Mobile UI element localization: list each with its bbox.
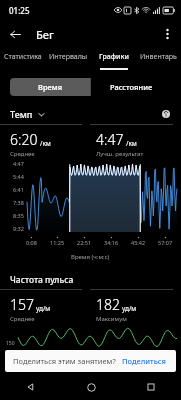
button[interactable]: 182 [90, 289, 181, 323]
button[interactable]: Назад [5, 24, 25, 44]
button[interactable]: Справка [159, 107, 173, 121]
staticText: Бег [36, 27, 54, 42]
staticText: Время [38, 82, 63, 92]
staticText: Поделиться [122, 356, 166, 366]
staticText: 150 [6, 340, 15, 347]
staticText: /км [126, 139, 137, 148]
button[interactable]: 157 [0, 289, 90, 323]
staticText: Графики [99, 52, 129, 62]
staticText: Максимум [96, 315, 127, 323]
button[interactable]: Главный экран [61, 374, 121, 400]
button[interactable]: 6:20 [0, 124, 90, 158]
button[interactable]: Расстояние [91, 78, 171, 96]
staticText: 4:47 [96, 130, 124, 149]
staticText: 45:42 [131, 239, 146, 246]
staticText: уд/м [122, 304, 137, 313]
staticText: Лучш. результат [96, 150, 144, 158]
button[interactable]: Время [10, 78, 90, 96]
staticText: 8:35 [13, 212, 24, 219]
staticText: Темп [10, 108, 33, 120]
staticText: 6:20 [10, 130, 38, 149]
staticText: 9:32 [13, 225, 24, 232]
button[interactable]: 4:47 [90, 124, 181, 158]
staticText: 182 [96, 295, 120, 314]
staticText: Среднее [10, 150, 35, 158]
staticText: 5:44 [13, 173, 24, 180]
staticText: 7:38 [13, 199, 24, 206]
staticText: Среднее [10, 315, 35, 323]
button[interactable]: Обзор [121, 374, 181, 400]
staticText: 4:47 [13, 160, 24, 167]
button[interactable]: Статистика [0, 48, 46, 72]
button[interactable]: Инвентарь [136, 48, 181, 72]
staticText: Инвентарь [140, 52, 177, 62]
staticText: 57:07 [158, 239, 173, 246]
staticText: /км [40, 139, 51, 148]
staticText: 34:16 [104, 239, 119, 246]
staticText: Поделиться этим занятием? [13, 356, 116, 366]
staticText: Расстояние [110, 82, 153, 92]
button[interactable]: Назад [0, 374, 61, 400]
button[interactable]: Поделиться [120, 354, 168, 368]
staticText: 01:25 [9, 5, 30, 16]
staticText: Статистика [4, 52, 42, 62]
staticText: Интервалы [49, 52, 88, 62]
staticText: 22:51 [77, 239, 92, 246]
button[interactable]: Графики [91, 48, 136, 72]
staticText: Время (ч:м:с) [71, 253, 110, 261]
staticText: уд/м [36, 304, 51, 313]
staticText: 6:41 [13, 186, 24, 193]
staticText: Частота пульса [10, 274, 74, 286]
staticText: 0:08 [26, 239, 37, 246]
staticText: 11:25 [50, 239, 65, 246]
button[interactable]: Интервалы [46, 48, 91, 72]
button[interactable]: Ещё [157, 24, 177, 44]
button[interactable]: Темп [10, 108, 49, 120]
staticText: 157 [10, 295, 34, 314]
